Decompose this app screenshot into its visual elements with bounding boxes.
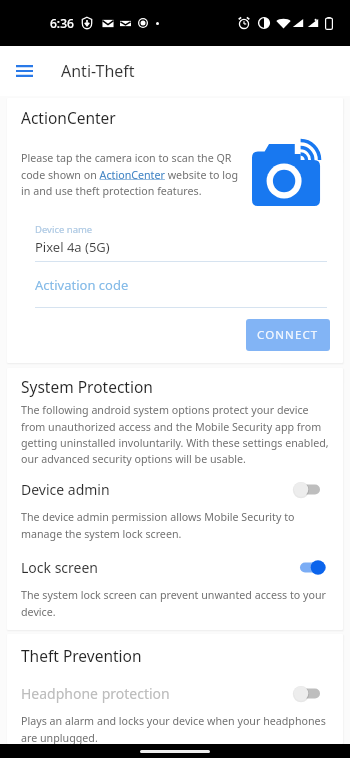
staticText: Please tap the camera icon to scan the Q… bbox=[21, 151, 243, 198]
button[interactable]: Lock screen bbox=[21, 557, 330, 619]
staticText: The system lock screen can prevent unwan… bbox=[21, 588, 330, 619]
staticText: Plays an alarm and locks your device whe… bbox=[21, 714, 330, 744]
staticText: Anti-Theft bbox=[61, 60, 135, 82]
staticText: Lock screen bbox=[21, 558, 294, 577]
button[interactable]: CONNECT bbox=[246, 319, 330, 351]
staticText: The following android system options pro… bbox=[21, 403, 330, 466]
button[interactable]: Device admin bbox=[21, 479, 330, 541]
staticText: System Protection bbox=[21, 376, 153, 397]
staticText: ActionCenter bbox=[21, 107, 116, 128]
staticText: Pixel 4a (5G) bbox=[35, 238, 110, 256]
staticText: Device admin bbox=[21, 480, 294, 499]
staticText: CONNECT bbox=[257, 327, 319, 343]
staticText: Activation code bbox=[35, 276, 129, 294]
staticText: The device admin permission allows Mobil… bbox=[21, 510, 330, 541]
staticText: Theft Prevention bbox=[21, 645, 142, 666]
staticText: Headphone protection bbox=[21, 684, 294, 703]
button[interactable]: Headphone protection bbox=[21, 683, 330, 744]
staticText: 6:36 bbox=[50, 15, 74, 31]
button[interactable]: Open navigation menu bbox=[4, 51, 44, 91]
staticText: Device name bbox=[35, 223, 93, 236]
